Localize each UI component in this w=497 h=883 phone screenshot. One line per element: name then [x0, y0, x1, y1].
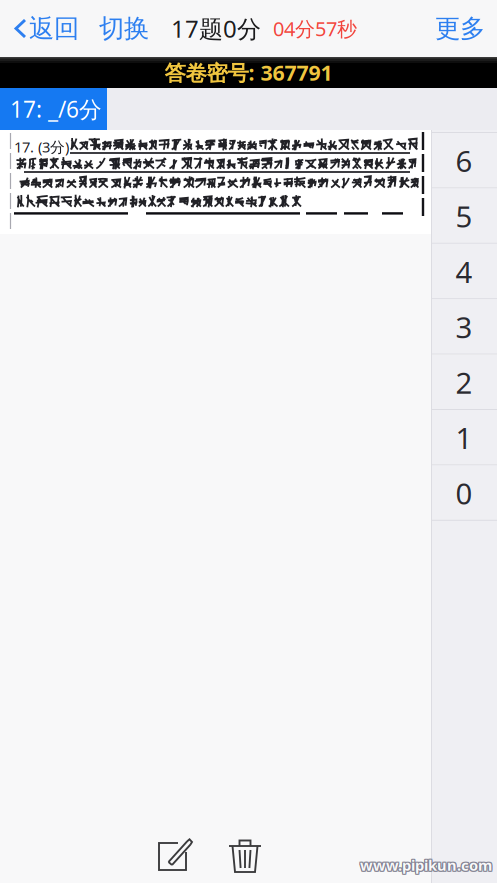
staticText: 4	[455, 252, 472, 291]
staticText: 17: _/6分	[10, 94, 102, 124]
staticText: 5	[455, 197, 472, 236]
staticText: www.pipikun.com	[359, 854, 491, 874]
staticText: www.pipikun.com	[360, 854, 492, 874]
staticText: 切换	[99, 13, 149, 44]
button[interactable]: 17: _/6分	[0, 88, 107, 130]
staticText: 04分57秒	[273, 15, 357, 42]
staticText: www.pipikun.com	[361, 856, 493, 876]
staticText: 2	[455, 363, 472, 402]
button[interactable]: Delete	[220, 832, 272, 880]
button[interactable]: 2	[431, 355, 497, 410]
staticText: www.pipikun.com	[360, 856, 492, 876]
button[interactable]: 更多	[421, 0, 497, 57]
button[interactable]: 3	[431, 299, 497, 355]
button[interactable]: 返回	[0, 0, 87, 57]
button[interactable]: 切换	[87, 0, 161, 57]
button[interactable]: 4	[431, 244, 497, 299]
staticText: www.pipikun.com	[359, 856, 491, 876]
staticText: www.pipikun.com	[360, 855, 492, 875]
staticText: 6	[455, 141, 472, 180]
button[interactable]: 0	[431, 465, 497, 521]
staticText: 17. (3分)	[14, 137, 69, 156]
staticText: 答卷密号: 367791	[164, 58, 332, 87]
button[interactable]: 1	[431, 410, 497, 465]
staticText: 17题0分	[171, 13, 261, 44]
staticText: www.pipikun.com	[361, 854, 493, 874]
button[interactable]: Answer sheet scan	[0, 130, 431, 234]
staticText: www.pipikun.com	[361, 855, 493, 875]
staticText: www.pipikun.com	[359, 855, 491, 875]
button[interactable]: 5	[431, 188, 497, 244]
button[interactable]: Edit answer	[150, 832, 202, 880]
staticText: 1	[455, 418, 472, 457]
button[interactable]: 6	[431, 133, 497, 188]
staticText: 0	[455, 474, 472, 513]
staticText: 返回	[29, 13, 79, 44]
staticText: 更多	[435, 13, 485, 44]
staticText: 3	[455, 307, 472, 346]
